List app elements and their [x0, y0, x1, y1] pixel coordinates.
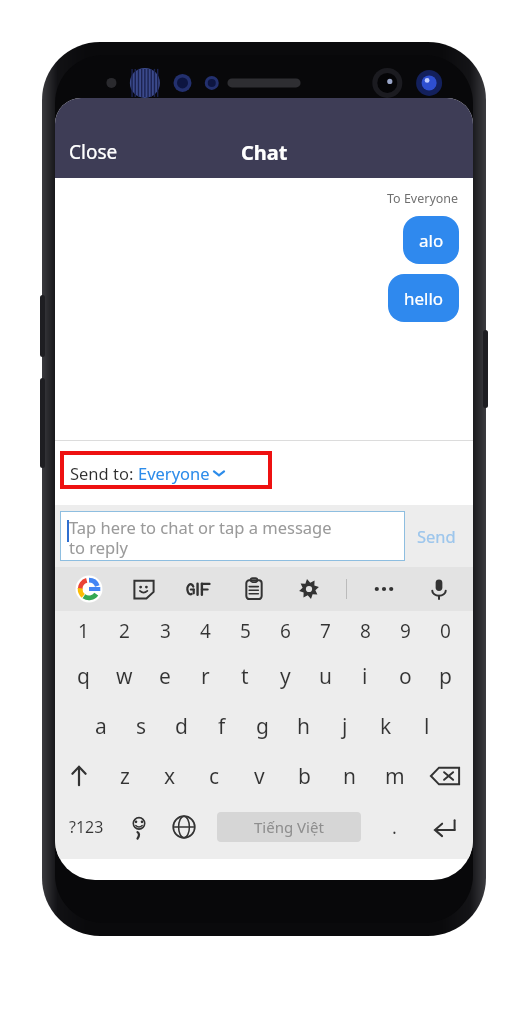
- staticText: 3: [160, 618, 171, 644]
- button[interactable]: ?123: [55, 801, 117, 853]
- button[interactable]: Clipboard: [236, 571, 272, 607]
- button[interactable]: t: [225, 651, 265, 701]
- staticText: b: [298, 762, 311, 791]
- staticText: w: [116, 662, 133, 691]
- staticText: g: [256, 712, 269, 741]
- staticText: c: [209, 762, 220, 791]
- button[interactable]: 8: [345, 611, 385, 651]
- button[interactable]: Shift: [55, 751, 103, 801]
- staticText: k: [380, 712, 392, 741]
- staticText: Tap here to chat or tap a message to rep…: [69, 516, 332, 559]
- button[interactable]: x: [147, 751, 192, 801]
- button[interactable]: 5: [225, 611, 265, 651]
- staticText: o: [399, 662, 412, 691]
- button[interactable]: r: [185, 651, 225, 701]
- staticText: alo: [419, 229, 444, 252]
- button[interactable]: 4: [185, 611, 225, 651]
- staticText: v: [254, 762, 265, 791]
- staticText: t: [241, 662, 249, 691]
- button[interactable]: j: [324, 701, 365, 751]
- staticText: s: [136, 712, 147, 741]
- button[interactable]: Voice input: [421, 571, 457, 607]
- button[interactable]: Emoji and comma: [117, 801, 161, 853]
- staticText: Send to:: [70, 462, 138, 484]
- button[interactable]: o: [385, 651, 425, 701]
- button[interactable]: Send: [400, 505, 473, 567]
- button[interactable]: 7: [305, 611, 345, 651]
- button[interactable]: g: [242, 701, 283, 751]
- staticText: x: [164, 762, 176, 791]
- button[interactable]: s: [121, 701, 161, 751]
- button[interactable]: b: [282, 751, 327, 801]
- staticText: p: [439, 662, 452, 691]
- staticText: Close: [69, 139, 118, 165]
- staticText: j: [342, 712, 348, 741]
- staticText: i: [362, 662, 368, 691]
- button[interactable]: p: [425, 651, 465, 701]
- staticText: f: [218, 712, 226, 741]
- button[interactable]: w: [104, 651, 145, 701]
- button[interactable]: Google Assistant: [71, 571, 107, 607]
- staticText: n: [343, 762, 356, 791]
- staticText: ?123: [69, 816, 104, 838]
- staticText: Tiếng Việt: [254, 817, 324, 837]
- staticText: y: [280, 662, 291, 691]
- button[interactable]: Tap here to chat or tap a message to rep…: [60, 511, 405, 561]
- staticText: To Everyone: [387, 190, 459, 207]
- button[interactable]: .: [371, 801, 417, 853]
- button[interactable]: Backspace: [417, 751, 473, 801]
- staticText: 8: [360, 618, 371, 644]
- staticText: e: [159, 662, 171, 691]
- staticText: 1: [78, 618, 89, 644]
- button[interactable]: 3: [145, 611, 185, 651]
- button[interactable]: 2: [104, 611, 145, 651]
- staticText: 4: [200, 618, 211, 644]
- staticText: 9: [400, 618, 411, 644]
- button[interactable]: Stickers: [126, 571, 162, 607]
- staticText: a: [95, 712, 107, 741]
- button[interactable]: n: [327, 751, 372, 801]
- button[interactable]: c: [192, 751, 237, 801]
- staticText: z: [120, 762, 130, 791]
- button[interactable]: Send to:: [66, 456, 229, 490]
- button[interactable]: 0: [425, 611, 465, 651]
- button[interactable]: z: [103, 751, 147, 801]
- button[interactable]: GIF: [181, 571, 217, 607]
- staticText: Chat: [241, 139, 288, 166]
- button[interactable]: e: [145, 651, 185, 701]
- button[interactable]: i: [345, 651, 385, 701]
- staticText: Everyone: [138, 462, 210, 484]
- button[interactable]: h: [283, 701, 324, 751]
- staticText: r: [201, 662, 210, 691]
- button[interactable]: 6: [265, 611, 305, 651]
- button[interactable]: Tiếng Việt: [207, 801, 371, 853]
- button[interactable]: f: [201, 701, 242, 751]
- button[interactable]: Settings: [291, 571, 327, 607]
- button[interactable]: k: [365, 701, 406, 751]
- button[interactable]: Close: [55, 133, 132, 171]
- button[interactable]: u: [305, 651, 345, 701]
- staticText: m: [385, 762, 405, 791]
- button[interactable]: Enter: [417, 801, 473, 853]
- button[interactable]: Change language: [161, 801, 207, 853]
- staticText: 7: [320, 618, 331, 644]
- button[interactable]: l: [406, 701, 447, 751]
- staticText: u: [319, 662, 332, 691]
- button[interactable]: m: [372, 751, 417, 801]
- button[interactable]: 1: [63, 611, 104, 651]
- button[interactable]: alo: [403, 216, 459, 264]
- staticText: 2: [119, 618, 130, 644]
- staticText: l: [424, 712, 430, 741]
- staticText: d: [175, 712, 188, 741]
- button[interactable]: a: [81, 701, 121, 751]
- button[interactable]: hello: [388, 274, 459, 322]
- button[interactable]: v: [237, 751, 282, 801]
- button[interactable]: d: [161, 701, 201, 751]
- staticText: q: [77, 662, 90, 691]
- staticText: .: [392, 815, 397, 840]
- button[interactable]: More options: [366, 571, 402, 607]
- button[interactable]: q: [63, 651, 104, 701]
- button[interactable]: y: [265, 651, 305, 701]
- staticText: 0: [440, 618, 451, 644]
- button[interactable]: 9: [385, 611, 425, 651]
